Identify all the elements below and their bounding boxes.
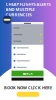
- button[interactable]: SEARCH: [11, 71, 43, 77]
- staticText: CHEAP FLIGHTS ALERTS AND MULTIPLE CURREN…: [5, 1, 50, 17]
- staticText: BOOK NOW CLICK HERE: [4, 85, 52, 90]
- staticText: SEARCH: [22, 72, 32, 75]
- button[interactable]: [16, 92, 39, 97]
